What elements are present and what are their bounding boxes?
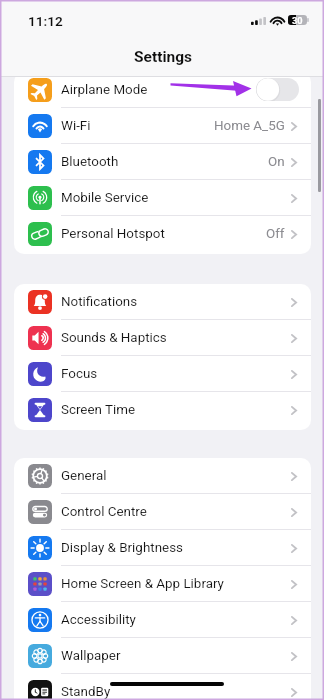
staticText: Airplane Mode xyxy=(61,82,148,98)
staticText: 30 xyxy=(292,15,303,25)
staticText: 11:12 xyxy=(28,13,63,29)
button[interactable]: Screen Time xyxy=(14,392,311,428)
staticText: General xyxy=(61,468,107,484)
button[interactable]: Airplane Mode xyxy=(14,72,311,108)
button[interactable]: Focus xyxy=(14,356,311,392)
button[interactable]: General xyxy=(14,458,311,494)
staticText: Display & Brightness xyxy=(61,540,183,556)
staticText: Mobile Service xyxy=(61,190,149,206)
button[interactable]: Wallpaper xyxy=(14,638,311,674)
staticText: Screen Time xyxy=(61,402,136,418)
staticText: Off xyxy=(266,226,285,242)
staticText: Wallpaper xyxy=(61,648,121,664)
staticText: Focus xyxy=(61,366,98,382)
staticText: On xyxy=(268,154,285,170)
staticText: Wi-Fi xyxy=(61,118,91,134)
staticText: Accessibility xyxy=(61,612,136,628)
staticText: Home A_5G xyxy=(214,118,285,134)
button[interactable]: Control Centre xyxy=(14,494,311,530)
staticText: Personal Hotspot xyxy=(61,226,165,242)
staticText: Settings xyxy=(134,48,193,66)
button[interactable]: Accessibility xyxy=(14,602,311,638)
button[interactable]: Wi-Fi xyxy=(14,108,311,144)
button[interactable]: Personal Hotspot xyxy=(14,216,311,252)
staticText: Notifications xyxy=(61,294,138,310)
button[interactable]: Notifications xyxy=(14,284,311,320)
staticText: StandBy xyxy=(61,684,111,700)
staticText: Bluetooth xyxy=(61,154,119,170)
button[interactable]: Sounds & Haptics xyxy=(14,320,311,356)
button[interactable]: Display & Brightness xyxy=(14,530,311,566)
button[interactable]: Mobile Service xyxy=(14,180,311,216)
button[interactable]: Airplane Mode toggle xyxy=(256,78,299,101)
button[interactable]: StandBy xyxy=(14,674,311,700)
staticText: Sounds & Haptics xyxy=(61,330,167,346)
button[interactable]: Home Screen & App Library xyxy=(14,566,311,602)
button[interactable]: Bluetooth xyxy=(14,144,311,180)
staticText: Home Screen & App Library xyxy=(61,576,224,592)
staticText: Control Centre xyxy=(61,504,147,520)
